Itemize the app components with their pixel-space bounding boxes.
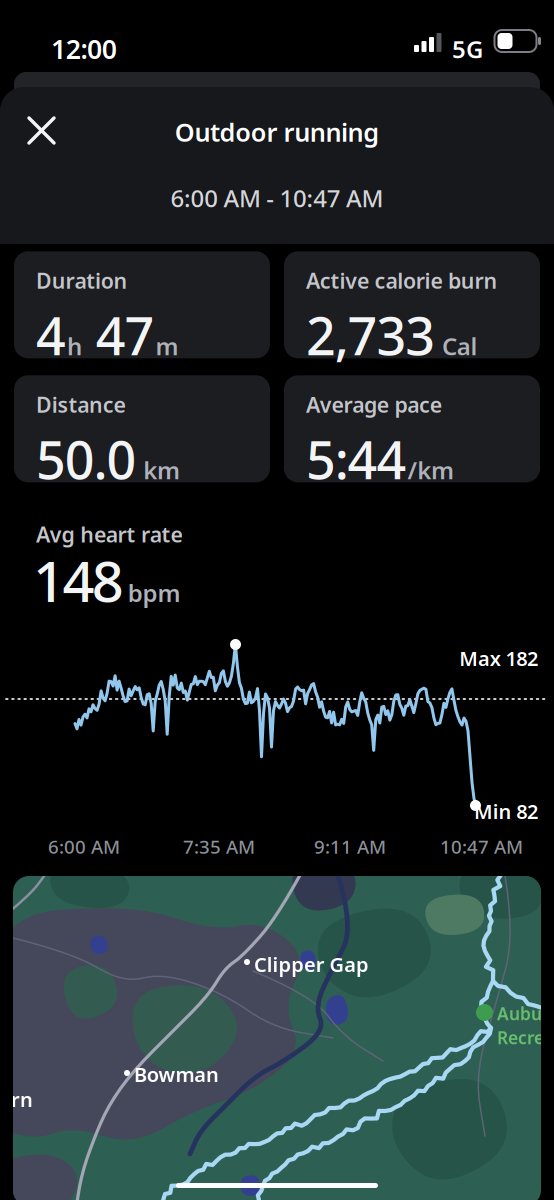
button[interactable]: Close [13, 102, 70, 159]
staticText: 12:00 [51, 31, 117, 66]
staticText: rn [11, 1086, 33, 1113]
staticText: 2,733 [306, 301, 435, 370]
staticText: Min 82 [474, 798, 538, 825]
staticText: 5:44 [306, 425, 406, 494]
staticText: 47 [83, 301, 155, 370]
staticText: Bowman [134, 1061, 219, 1088]
staticText: Max 182 [459, 645, 538, 672]
staticText: 6:00 AM [48, 834, 120, 859]
staticText: Duration [36, 266, 128, 295]
staticText: 148 [33, 543, 124, 617]
staticText: Clipper Gap [254, 951, 369, 978]
staticText: bpm [128, 577, 180, 609]
staticText: 4 [36, 301, 66, 370]
staticText: Cal [436, 330, 478, 362]
staticText: 5G [452, 33, 483, 65]
staticText: m [156, 330, 179, 362]
staticText: h [67, 330, 82, 362]
staticText: 7:35 AM [183, 834, 255, 859]
staticText: Avg heart rate [36, 520, 182, 548]
staticText: Outdoor running [175, 115, 379, 149]
staticText: /km [407, 454, 454, 486]
staticText: Distance [36, 390, 126, 419]
staticText: Average pace [306, 390, 442, 419]
staticText: Active calorie burn [306, 266, 497, 295]
staticText: 6:00 AM - 10:47 AM [170, 182, 384, 214]
staticText: Auburn [497, 1002, 554, 1025]
staticText: 10:47 AM [440, 834, 523, 859]
staticText: km [137, 454, 180, 486]
staticText: 50.0 [36, 425, 136, 494]
staticText: 9:11 AM [314, 834, 386, 859]
staticText: Recreati [497, 1026, 554, 1049]
